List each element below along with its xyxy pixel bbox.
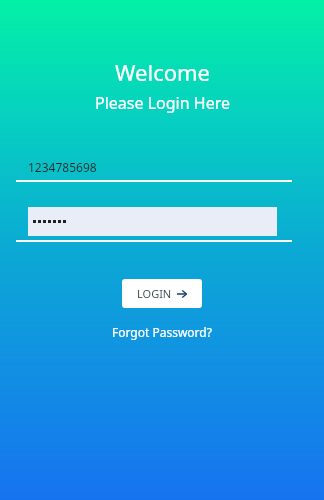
button[interactable]: [16, 207, 292, 242]
staticText: Welcome: [115, 57, 210, 87]
button[interactable]: LOGIN: [122, 279, 202, 308]
staticText: 1234785698: [28, 159, 97, 175]
staticText: Please Login Here: [95, 92, 230, 114]
staticText: Forgot Password?: [112, 324, 212, 340]
button[interactable]: 1234785698: [16, 152, 292, 182]
button[interactable]: Forgot Password?: [106, 322, 218, 342]
other: Login: [176, 288, 188, 300]
staticText: LOGIN: [137, 286, 172, 301]
